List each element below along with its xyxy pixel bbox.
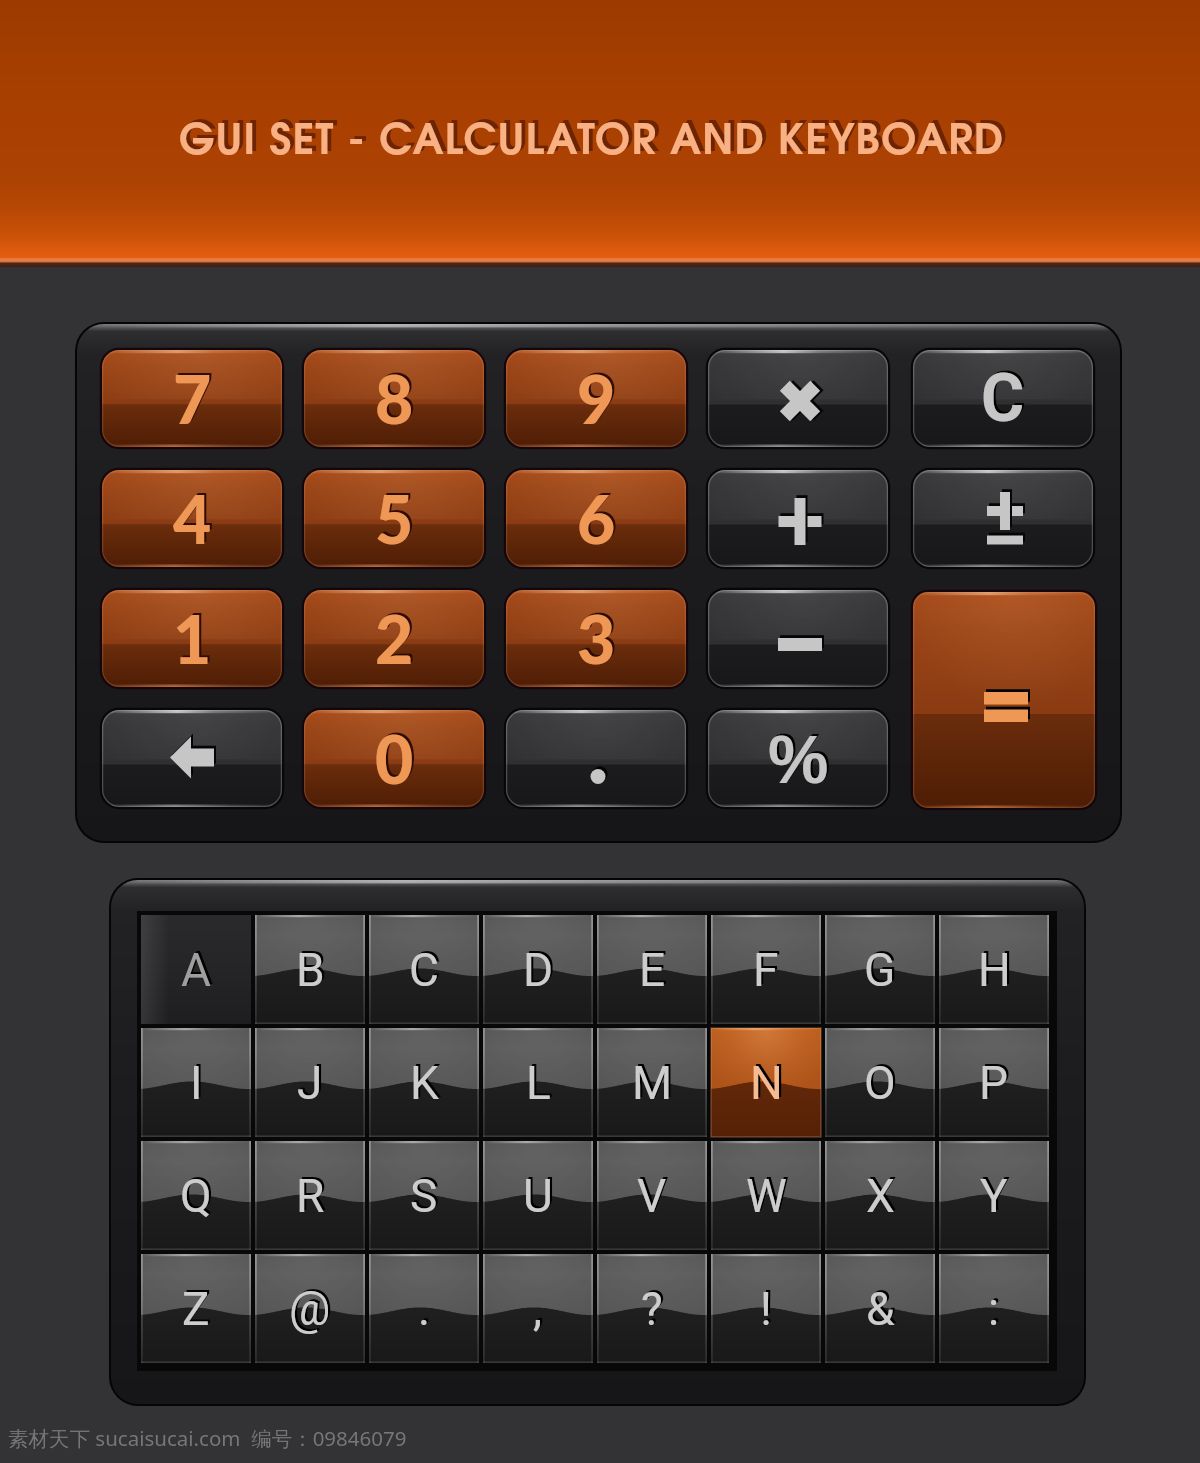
button[interactable]: 7 xyxy=(102,350,282,447)
staticText: W xyxy=(746,1169,787,1223)
button[interactable]: Z xyxy=(141,1254,251,1363)
staticText: 4 xyxy=(173,479,212,558)
button[interactable]: F xyxy=(711,915,821,1024)
staticText: S xyxy=(410,1169,438,1223)
button[interactable]: 0 xyxy=(304,710,484,807)
staticText: 5 xyxy=(375,479,414,558)
staticText: N xyxy=(750,1056,783,1110)
button[interactable]: J xyxy=(255,1028,365,1137)
staticText: Y xyxy=(980,1169,1008,1223)
button[interactable]: ? xyxy=(597,1254,707,1363)
button[interactable]: V xyxy=(597,1141,707,1250)
button[interactable]: S xyxy=(369,1141,479,1250)
button[interactable]: Percent xyxy=(708,710,888,807)
staticText: K xyxy=(410,1056,439,1110)
button[interactable]: I xyxy=(141,1028,251,1137)
staticText: L xyxy=(526,1056,551,1110)
staticText: 素材天下 sucaisucai.com 编号：09846079 xyxy=(8,1424,407,1452)
button[interactable]: & xyxy=(825,1254,935,1363)
staticText: R xyxy=(296,1169,325,1223)
button[interactable]: : xyxy=(939,1254,1049,1363)
button[interactable]: Backspace xyxy=(102,710,282,807)
button[interactable]: N xyxy=(711,1028,821,1137)
button[interactable]: , xyxy=(483,1254,593,1363)
button[interactable]: L xyxy=(483,1028,593,1137)
staticText: @ xyxy=(289,1282,331,1336)
button[interactable]: 1 xyxy=(102,590,282,687)
staticText: M xyxy=(632,1056,673,1110)
button[interactable]: G xyxy=(825,915,935,1024)
button[interactable]: W xyxy=(711,1141,821,1250)
button[interactable]: A xyxy=(141,915,251,1024)
button[interactable]: @ xyxy=(255,1254,365,1363)
staticText: E xyxy=(639,943,666,997)
staticText: 9 xyxy=(577,359,616,438)
staticText: Z xyxy=(182,1282,210,1336)
button[interactable]: Equals xyxy=(913,592,1095,808)
button[interactable]: ! xyxy=(711,1254,821,1363)
button[interactable]: R xyxy=(255,1141,365,1250)
button[interactable]: E xyxy=(597,915,707,1024)
button[interactable]: Plus minus xyxy=(913,470,1093,567)
staticText: O xyxy=(864,1056,896,1110)
staticText: , xyxy=(533,1282,543,1336)
button[interactable]: K xyxy=(369,1028,479,1137)
staticText: GUI SET - CALCULATOR AND KEYBOARD xyxy=(179,123,1005,162)
staticText: H xyxy=(978,943,1011,997)
staticText: B xyxy=(296,943,325,997)
button[interactable]: 3 xyxy=(506,590,686,687)
staticText: & xyxy=(866,1282,895,1336)
staticText: 8 xyxy=(375,359,414,438)
staticText: A xyxy=(181,943,212,997)
staticText: U xyxy=(523,1169,553,1223)
staticText: F xyxy=(753,943,779,997)
staticText: D xyxy=(523,943,554,997)
button[interactable]: D xyxy=(483,915,593,1024)
staticText: G xyxy=(864,943,896,997)
button[interactable]: Q xyxy=(141,1141,251,1250)
button[interactable]: Clear xyxy=(913,350,1093,447)
staticText: 3 xyxy=(577,599,616,678)
button[interactable]: Y xyxy=(939,1141,1049,1250)
button[interactable]: 9 xyxy=(506,350,686,447)
button[interactable]: M xyxy=(597,1028,707,1137)
button[interactable]: 6 xyxy=(506,470,686,567)
staticText: % xyxy=(768,721,829,797)
button[interactable]: Decimal point xyxy=(506,710,686,807)
button[interactable]: 2 xyxy=(304,590,484,687)
staticText: 0 xyxy=(375,719,414,798)
staticText: J xyxy=(297,1056,323,1110)
staticText: ? xyxy=(641,1282,663,1336)
button[interactable]: H xyxy=(939,915,1049,1024)
staticText: 1 xyxy=(173,599,212,678)
button[interactable]: Multiply xyxy=(708,350,888,447)
staticText: : xyxy=(988,1282,1000,1336)
staticText: 7 xyxy=(173,359,212,438)
staticText: . xyxy=(418,1282,431,1336)
button[interactable]: C xyxy=(369,915,479,1024)
staticText: C xyxy=(409,943,439,997)
button[interactable]: 8 xyxy=(304,350,484,447)
staticText: ! xyxy=(760,1282,772,1336)
button[interactable]: Add xyxy=(708,470,888,567)
staticText: 6 xyxy=(577,479,616,558)
staticText: Q xyxy=(180,1169,212,1223)
staticText: X xyxy=(866,1169,895,1223)
button[interactable]: 5 xyxy=(304,470,484,567)
staticText: V xyxy=(637,1169,667,1223)
button[interactable]: 4 xyxy=(102,470,282,567)
button[interactable]: P xyxy=(939,1028,1049,1137)
staticText: 2 xyxy=(375,599,414,678)
staticText: C xyxy=(981,360,1025,437)
staticText: P xyxy=(979,1056,1009,1110)
button[interactable]: . xyxy=(369,1254,479,1363)
button[interactable]: Subtract xyxy=(708,590,888,687)
button[interactable]: U xyxy=(483,1141,593,1250)
staticText: I xyxy=(190,1056,203,1110)
button[interactable]: B xyxy=(255,915,365,1024)
button[interactable]: X xyxy=(825,1141,935,1250)
button[interactable]: O xyxy=(825,1028,935,1137)
